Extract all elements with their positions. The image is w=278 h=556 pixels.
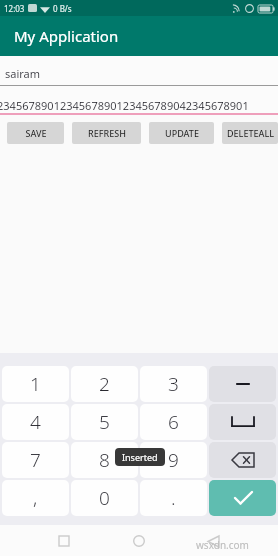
staticText: 8: [99, 447, 110, 473]
button[interactable]: 2: [71, 366, 138, 402]
button[interactable]: 6: [140, 404, 207, 440]
staticText: 2345678901234567890123456789042345678901: [0, 98, 249, 113]
staticText: 4: [30, 409, 41, 435]
staticText: wsxdn.com: [196, 538, 249, 552]
button[interactable]: 2345678901234567890123456789042345678901: [0, 97, 278, 113]
staticText: 9: [168, 447, 179, 473]
button[interactable]: 8: [71, 442, 138, 478]
button[interactable]: Home: [128, 530, 150, 552]
button[interactable]: REFRESH: [72, 122, 141, 144]
button[interactable]: 1: [2, 366, 69, 402]
staticText: 5: [99, 409, 110, 435]
button[interactable]: 5: [71, 404, 138, 440]
staticText: 0 B/s: [53, 3, 72, 14]
staticText: Inserted: [122, 451, 158, 463]
staticText: 1: [30, 371, 41, 397]
button[interactable]: 7: [2, 442, 69, 478]
button[interactable]: Recent apps: [54, 531, 74, 551]
staticText: 6: [168, 409, 179, 435]
staticText: My Application: [14, 26, 119, 46]
staticText: 2: [99, 371, 110, 397]
button[interactable]: Backspace: [209, 442, 276, 478]
staticText: UPDATE: [165, 127, 199, 139]
button[interactable]: Minus: [209, 366, 276, 402]
button[interactable]: 9: [140, 442, 207, 478]
button[interactable]: 4: [2, 404, 69, 440]
staticText: DELETEALL: [227, 127, 274, 139]
button[interactable]: Back: [203, 531, 223, 551]
staticText: 3: [168, 371, 179, 397]
button[interactable]: Space: [209, 404, 276, 440]
staticText: sairam: [5, 66, 41, 81]
staticText: 12:03: [4, 3, 25, 14]
button[interactable]: DELETEALL: [222, 122, 278, 144]
staticText: SAVE: [25, 127, 47, 139]
button[interactable]: ,: [2, 480, 69, 516]
button[interactable]: UPDATE: [149, 122, 214, 144]
staticText: ,: [33, 485, 38, 511]
button[interactable]: 3: [140, 366, 207, 402]
button[interactable]: .: [140, 480, 207, 516]
button[interactable]: SAVE: [7, 122, 64, 144]
staticText: .: [171, 485, 176, 511]
staticText: 0: [99, 485, 110, 511]
button[interactable]: 0: [71, 480, 138, 516]
button[interactable]: Enter: [209, 480, 276, 516]
button[interactable]: sairam: [0, 61, 278, 85]
staticText: REFRESH: [88, 127, 126, 139]
staticText: 7: [30, 447, 41, 473]
